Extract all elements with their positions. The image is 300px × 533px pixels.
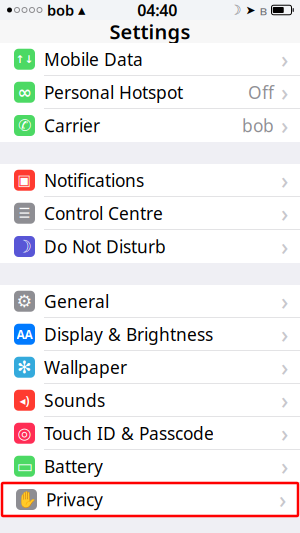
button[interactable]: ▭ [0,450,300,483]
button[interactable]: ✆ [0,109,300,142]
button[interactable]: ☰ [0,197,300,230]
staticText: Off [248,81,274,104]
staticText: ⚙ [16,291,32,311]
staticText: Sounds [44,389,105,412]
staticText: › [281,451,288,481]
staticText: Do Not Disturb [44,235,166,258]
staticText: ☰ [18,206,30,221]
staticText: 04:40 [137,0,177,21]
staticText: Wallpaper [44,356,127,379]
staticText: ▴ [78,2,85,18]
staticText: ➤ [245,3,255,17]
staticText: Touch ID & Passcode [44,422,214,445]
button[interactable]: ▣ [0,164,300,197]
staticText: ◎ [17,424,31,442]
staticText: ✻ [17,357,32,377]
button[interactable]: ✻ [0,351,300,384]
staticText: › [281,165,288,195]
staticText: Mobile Data [44,48,143,71]
button[interactable]: AA [0,318,300,351]
button[interactable]: ◎ [0,417,300,450]
staticText: Carrier [44,114,100,137]
staticText: › [281,44,288,74]
staticText: ↑↓ [15,53,33,65]
button[interactable]: ✋ [0,483,300,516]
staticText: AA [16,326,32,342]
staticText: › [279,484,286,514]
staticText: Privacy [46,488,103,511]
staticText: ☽ [16,237,32,256]
staticText: bob [242,114,274,137]
staticText: ▭ [16,456,32,476]
staticText: › [281,319,288,349]
staticText: ◂) [19,392,29,408]
staticText: Display & Brightness [44,323,213,346]
staticText: bob [47,0,74,20]
staticText: ʙ [259,1,267,19]
staticText: › [281,385,288,415]
staticText: Control Centre [44,202,163,225]
staticText: › [281,352,288,382]
staticText: › [281,110,288,140]
staticText: › [281,418,288,448]
staticText: ☽ [229,2,241,17]
staticText: Personal Hotspot [44,81,183,104]
button[interactable]: ⚙ [0,285,300,318]
staticText: ▣ [17,172,31,188]
staticText: › [281,231,288,261]
staticText: Settings [109,18,190,45]
button[interactable]: ∞ [0,76,300,109]
button[interactable]: ☽ [0,230,300,263]
staticText: ✆ [18,116,31,135]
staticText: Battery [44,455,103,478]
staticText: ✋ [16,490,36,509]
button[interactable]: ◂) [0,384,300,417]
staticText: › [281,286,288,316]
staticText: › [281,198,288,228]
button[interactable]: ↑↓ [0,43,300,76]
staticText: ∞ [17,82,31,102]
staticText: General [44,290,109,313]
staticText: Notifications [44,169,144,192]
staticText: › [281,77,288,107]
